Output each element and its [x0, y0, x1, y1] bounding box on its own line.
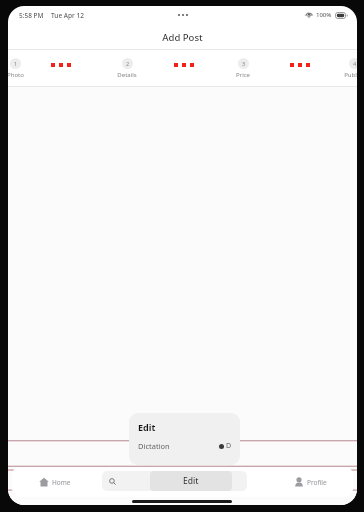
- button[interactable]: 4: [339, 58, 357, 79]
- button[interactable]: 1: [8, 58, 30, 79]
- staticText: 1: [14, 60, 18, 67]
- staticText: D: [226, 441, 232, 451]
- button[interactable]: Home: [12, 467, 98, 497]
- staticText: Dictation: [138, 441, 170, 451]
- staticText: 3: [242, 60, 246, 67]
- staticText: Price: [236, 71, 250, 79]
- button[interactable]: 2: [112, 58, 142, 79]
- staticText: Photo: [8, 71, 24, 79]
- staticText: 5:58 PM: [19, 11, 44, 20]
- staticText: Home: [52, 478, 71, 487]
- button[interactable]: 3: [228, 58, 258, 79]
- button[interactable]: Edit: [102, 471, 247, 491]
- button[interactable]: Dictation: [138, 441, 232, 451]
- staticText: Details: [117, 71, 137, 79]
- staticText: 2: [126, 60, 130, 67]
- staticText: Tue Apr 12: [51, 11, 84, 20]
- staticText: Publish: [344, 71, 357, 79]
- button[interactable]: Profile: [268, 467, 353, 497]
- staticText: Profile: [307, 478, 327, 487]
- staticText: 4: [353, 60, 357, 67]
- staticText: Edit: [138, 421, 156, 433]
- staticText: Edit: [183, 475, 199, 487]
- staticText: Add Post: [162, 31, 203, 44]
- staticText: 100%: [316, 11, 332, 19]
